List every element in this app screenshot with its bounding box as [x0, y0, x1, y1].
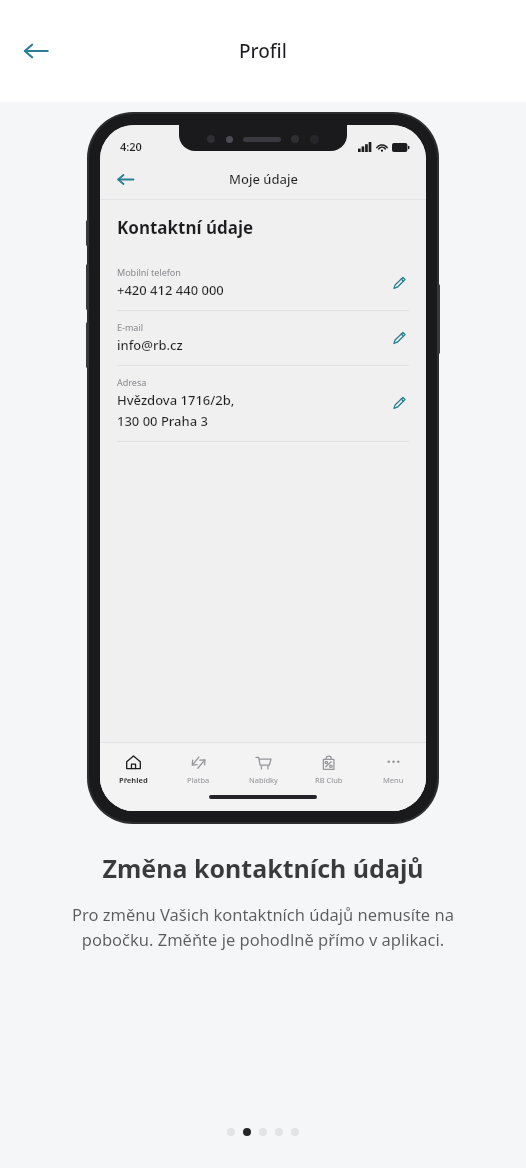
staticText: 130 00 Praha 3	[117, 412, 208, 430]
staticText: 4:20	[120, 139, 142, 154]
button[interactable]	[291, 1128, 299, 1136]
button[interactable]: E-mail	[100, 311, 426, 365]
button[interactable]: Platba	[166, 743, 231, 795]
staticText: +420 412 440 000	[117, 281, 224, 299]
staticText: Profil	[239, 38, 287, 64]
button[interactable]: Edit E-mail	[386, 325, 412, 351]
button[interactable]	[227, 1128, 235, 1136]
staticText: info@rb.cz	[117, 336, 183, 354]
staticText: Platba	[187, 775, 210, 785]
button[interactable]: Adresa	[100, 366, 426, 441]
staticText: RB Club	[315, 775, 343, 785]
staticText: Změna kontaktních údajů	[24, 851, 502, 885]
button[interactable]: Nabídky	[231, 743, 296, 795]
staticText: Adresa	[117, 376, 147, 388]
button[interactable]: Mobilní telefon	[100, 256, 426, 310]
button[interactable]: Menu	[361, 743, 426, 795]
button[interactable]: Back	[108, 162, 142, 196]
staticText: E-mail	[117, 321, 144, 333]
staticText: Kontaktní údaje	[117, 216, 254, 239]
button[interactable]	[259, 1128, 267, 1136]
button[interactable]: Back	[12, 27, 60, 75]
button[interactable]: Edit Mobilní telefon	[386, 270, 412, 296]
staticText: Přehled	[119, 775, 148, 785]
button[interactable]: RB Club	[296, 743, 361, 795]
staticText: Moje údaje	[229, 170, 298, 188]
staticText: Nabídky	[249, 775, 278, 785]
button[interactable]: Edit Adresa	[386, 390, 412, 416]
staticText: Menu	[383, 775, 404, 785]
staticText: Hvězdova 1716/2b,	[117, 391, 235, 409]
button[interactable]	[275, 1128, 283, 1136]
button[interactable]: Přehled	[100, 743, 166, 795]
button[interactable]	[243, 1128, 251, 1136]
staticText: Pro změnu Vašich kontaktních údajů nemus…	[40, 903, 486, 951]
staticText: Mobilní telefon	[117, 266, 181, 278]
